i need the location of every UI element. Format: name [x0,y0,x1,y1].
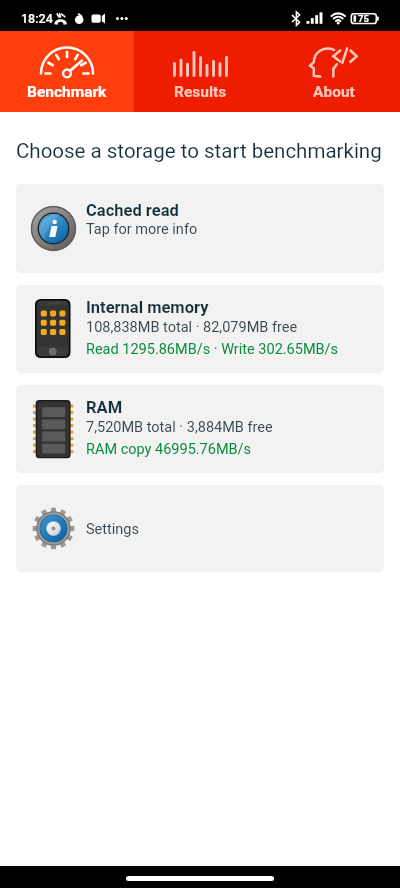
button[interactable]: Results tab [134,31,267,112]
staticText: 7,520MB total · 3,884MB free [86,419,273,436]
button[interactable]: Cached read [16,184,384,273]
staticText: 18:24 [21,11,53,26]
button[interactable]: RAM [16,385,384,473]
staticText: About [313,83,355,101]
staticText: Results [174,83,227,101]
staticText: RAM copy 46995.76MB/s [86,441,252,458]
staticText: Benchmark [27,83,107,101]
staticText: Cached read [86,201,179,220]
button[interactable]: Settings [16,485,384,572]
staticText: Internal memory [86,298,209,317]
button[interactable]: Internal memory [16,285,384,373]
staticText: Tap for more info [86,221,198,238]
button[interactable]: Benchmark tab [0,31,134,112]
staticText: Read 1295.86MB/s · Write 302.65MB/s [86,341,339,358]
staticText: Choose a storage to start benchmarking [16,139,382,163]
staticText: RAM [86,398,123,417]
staticText: 108,838MB total · 82,079MB free [86,319,298,336]
staticText: 75 [358,13,369,24]
button[interactable]: About tab [267,31,400,112]
staticText: Settings [86,521,139,538]
